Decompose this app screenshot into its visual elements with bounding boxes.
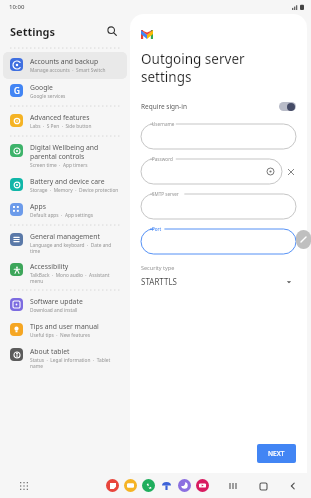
staticText: G	[14, 85, 20, 96]
staticText: Labs · S Pen · Side button	[30, 123, 92, 130]
button[interactable]: Password	[141, 159, 282, 184]
staticText: Tips and user manual	[30, 322, 99, 331]
staticText: 10:00	[9, 3, 25, 11]
button[interactable]: All apps	[18, 480, 30, 492]
staticText: Default apps · App settings	[30, 212, 94, 219]
staticText: About tablet	[30, 347, 70, 356]
button[interactable]: Clear	[285, 166, 296, 177]
button[interactable]: Recents	[227, 480, 239, 492]
button[interactable]: G	[0, 79, 130, 104]
staticText: Status · Legal information · Tablet name	[30, 357, 122, 369]
staticText: Language and keyboard · Date and time	[30, 242, 122, 254]
staticText: Software update	[30, 297, 83, 306]
button[interactable]: Require sign-in toggle	[279, 102, 296, 111]
staticText: Manage accounts · Smart Switch	[30, 67, 106, 74]
button[interactable]: SMTP server	[141, 194, 296, 219]
staticText: Outgoing server settings	[141, 50, 296, 86]
staticText: Digital Wellbeing and parental controls	[30, 143, 122, 161]
button[interactable]: Battery and device care	[0, 173, 130, 198]
button[interactable]: Edit	[296, 230, 311, 249]
staticText: Screen time · App timers	[30, 162, 88, 169]
button[interactable]: Software update	[0, 293, 130, 318]
staticText: Google	[30, 83, 53, 92]
staticText: Battery and device care	[30, 177, 105, 186]
staticText: Username	[152, 121, 175, 127]
staticText: Accessibility	[30, 262, 69, 271]
staticText: Accounts and backup	[30, 57, 99, 66]
button[interactable]: Home	[257, 480, 269, 492]
staticText: SMTP server	[152, 191, 179, 197]
button[interactable]: Digital Wellbeing and parental controls	[0, 139, 130, 173]
staticText: Useful tips · New features	[30, 332, 91, 339]
button[interactable]: NEXT	[257, 444, 296, 463]
staticText: Download and install	[30, 307, 78, 314]
staticText: Settings	[10, 24, 56, 39]
button[interactable]: Username	[141, 124, 296, 149]
button[interactable]: Tips and user manual	[0, 318, 130, 343]
button[interactable]: Port	[141, 229, 296, 254]
button[interactable]: Browser	[178, 479, 191, 492]
button[interactable]: Back	[287, 480, 299, 492]
staticText: Require sign-in	[141, 102, 187, 111]
button[interactable]: Phone	[142, 479, 155, 492]
staticText: General management	[30, 232, 100, 241]
staticText: STARTTLS	[141, 276, 178, 287]
button[interactable]: Search	[104, 23, 120, 39]
staticText: TalkBack · Mono audio · Assistant menu	[30, 272, 122, 284]
button[interactable]: Apps	[0, 198, 130, 223]
button[interactable]: Show password	[266, 167, 275, 176]
staticText: Google services	[30, 93, 66, 100]
button[interactable]: Accounts and backup	[3, 52, 127, 79]
button[interactable]: General management	[0, 228, 130, 258]
staticText: Advanced features	[30, 113, 90, 122]
button[interactable]: Files	[124, 479, 137, 492]
button[interactable]: YouTube	[196, 479, 209, 492]
button[interactable]: Keep	[106, 479, 119, 492]
staticText: Password	[152, 156, 173, 162]
staticText: Security type	[141, 264, 175, 271]
staticText: NEXT	[268, 449, 285, 458]
button[interactable]: Advanced features	[0, 109, 130, 134]
button[interactable]: Messages	[160, 479, 173, 492]
staticText: Storage · Memory · Device protection	[30, 187, 119, 194]
button[interactable]: About tablet	[0, 343, 130, 373]
staticText: Port	[152, 226, 162, 232]
button[interactable]: Accessibility	[0, 258, 130, 288]
staticText: Apps	[30, 202, 46, 211]
